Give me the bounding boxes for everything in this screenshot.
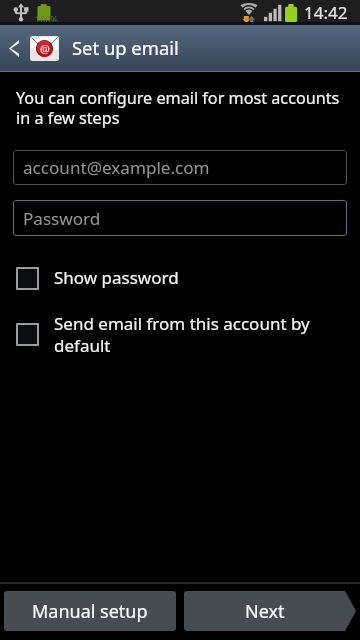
- button[interactable]: Password: [13, 200, 347, 236]
- button[interactable]: Show password: [10, 261, 350, 284]
- staticText: Set up email: [72, 35, 179, 60]
- staticText: You can configure email for most account…: [16, 87, 340, 129]
- staticText: 14:42: [304, 1, 348, 24]
- button[interactable]: Send email from this account by default: [10, 317, 350, 362]
- staticText: account@example.com: [23, 156, 210, 179]
- staticText: Manual setup: [32, 599, 148, 624]
- staticText: Send email from this account by default: [54, 312, 310, 357]
- staticText: Show password: [54, 266, 179, 289]
- button[interactable]: Next: [184, 591, 356, 631]
- staticText: Next: [245, 599, 285, 624]
- staticText: Password: [23, 207, 101, 230]
- button[interactable]: Back: [0, 25, 28, 72]
- button[interactable]: account@example.com: [13, 150, 347, 185]
- staticText: 100%: [35, 13, 58, 25]
- button[interactable]: Manual setup: [4, 591, 176, 631]
- staticText: @: [40, 41, 50, 56]
